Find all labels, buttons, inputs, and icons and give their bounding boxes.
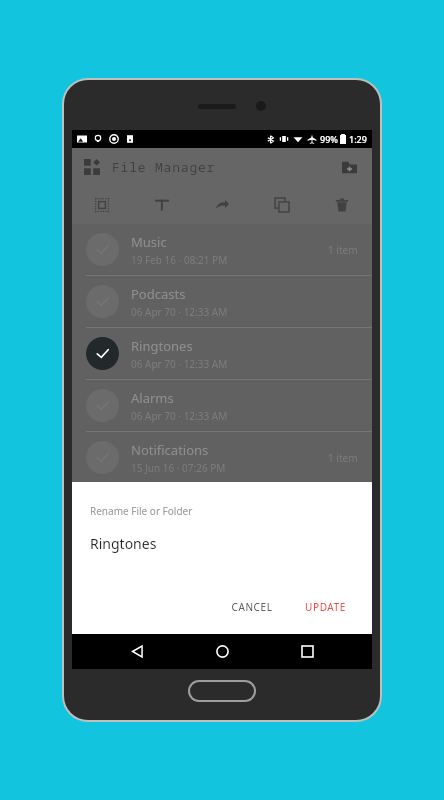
button[interactable]: CANCEL [221, 594, 283, 620]
button[interactable]: Create new folder [330, 148, 368, 186]
staticText: 1 item [328, 243, 358, 257]
staticText: 1 item [328, 451, 358, 465]
button[interactable]: UPDATE [295, 594, 356, 620]
button[interactable]: Select all [86, 189, 118, 221]
staticText: 06 Apr 70 · 12:33 AM [131, 513, 228, 527]
button[interactable]: Podcasts [72, 276, 372, 327]
button[interactable]: Delete [326, 189, 358, 221]
staticText: Alarms [131, 389, 174, 407]
button[interactable]: Home [202, 634, 242, 669]
staticText: 19 Feb 16 · 08:21 PM [131, 253, 228, 267]
button[interactable]: Music [72, 224, 372, 275]
staticText: 99% [320, 133, 338, 145]
staticText: UPDATE [305, 600, 346, 614]
button[interactable]: Copy [266, 189, 298, 221]
staticText: 1:29 [349, 133, 367, 145]
staticText: 15 Jun 16 · 07:26 PM [131, 461, 226, 475]
button[interactable]: Share [206, 189, 238, 221]
staticText: 06 Apr 70 · 12:33 AM [131, 357, 228, 371]
staticText: Pictures [131, 493, 180, 511]
staticText: Music [131, 233, 167, 251]
staticText: 06 Apr 70 · 12:33 AM [131, 409, 228, 423]
staticText: CANCEL [231, 600, 273, 614]
button[interactable]: Ringtones [72, 328, 372, 379]
staticText: File Manager [112, 158, 216, 176]
button[interactable]: Pictures [72, 484, 372, 535]
button[interactable]: Notifications [72, 432, 372, 483]
staticText: Ringtones [90, 534, 157, 553]
staticText: 06 Apr 70 · 12:33 AM [131, 305, 228, 319]
staticText: Notifications [131, 441, 209, 459]
button[interactable]: Rename [146, 189, 178, 221]
staticText: Rename File or Folder [90, 504, 193, 518]
button[interactable]: Recents [287, 634, 327, 669]
staticText: Podcasts [131, 285, 186, 303]
button[interactable]: Back [117, 634, 157, 669]
button[interactable]: Alarms [72, 380, 372, 431]
staticText: Ringtones [131, 337, 193, 355]
